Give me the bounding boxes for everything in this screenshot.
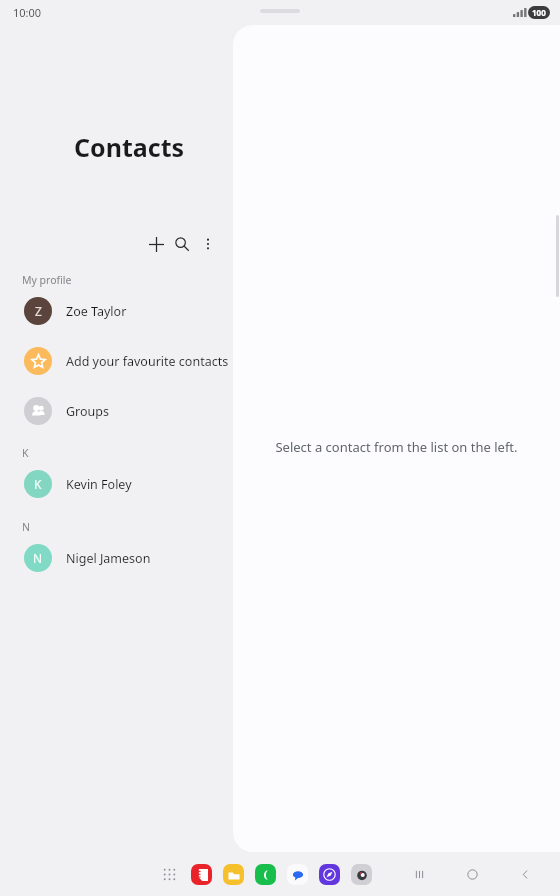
staticText: N bbox=[22, 520, 30, 534]
staticText: 10:00 bbox=[13, 5, 42, 20]
button[interactable]: Home bbox=[459, 861, 485, 887]
button[interactable]: Messages bbox=[284, 861, 310, 887]
staticText: Z bbox=[35, 303, 42, 319]
button[interactable]: Search bbox=[170, 232, 194, 256]
button[interactable]: More options bbox=[196, 232, 220, 256]
staticText: Select a contact from the list on the le… bbox=[275, 438, 518, 456]
button[interactable]: Back bbox=[512, 861, 538, 887]
staticText: Nigel Jameson bbox=[66, 550, 151, 567]
button[interactable]: Recents bbox=[406, 861, 432, 887]
button[interactable]: Add your favourite contacts bbox=[0, 341, 233, 381]
button[interactable]: N bbox=[0, 538, 233, 578]
button[interactable]: Phone bbox=[252, 861, 278, 887]
button[interactable]: Apps bbox=[156, 861, 182, 887]
button[interactable]: Camera bbox=[348, 861, 374, 887]
button[interactable]: My Files bbox=[220, 861, 246, 887]
button[interactable]: K bbox=[0, 464, 233, 504]
button[interactable]: Internet bbox=[316, 861, 342, 887]
staticText: 100 bbox=[532, 7, 546, 18]
staticText: N bbox=[33, 550, 43, 566]
staticText: My profile bbox=[22, 273, 72, 287]
staticText: Zoe Taylor bbox=[66, 303, 127, 320]
staticText: K bbox=[22, 446, 29, 460]
button[interactable]: Groups bbox=[0, 391, 233, 431]
staticText: Kevin Foley bbox=[66, 476, 132, 493]
button[interactable]: Z bbox=[0, 291, 233, 331]
staticText: Add your favourite contacts bbox=[66, 353, 229, 370]
button[interactable]: Notes bbox=[188, 861, 214, 887]
button[interactable]: Add contact bbox=[144, 232, 168, 256]
staticText: K bbox=[34, 476, 42, 492]
staticText: Groups bbox=[66, 403, 109, 420]
staticText: Contacts bbox=[74, 130, 185, 164]
